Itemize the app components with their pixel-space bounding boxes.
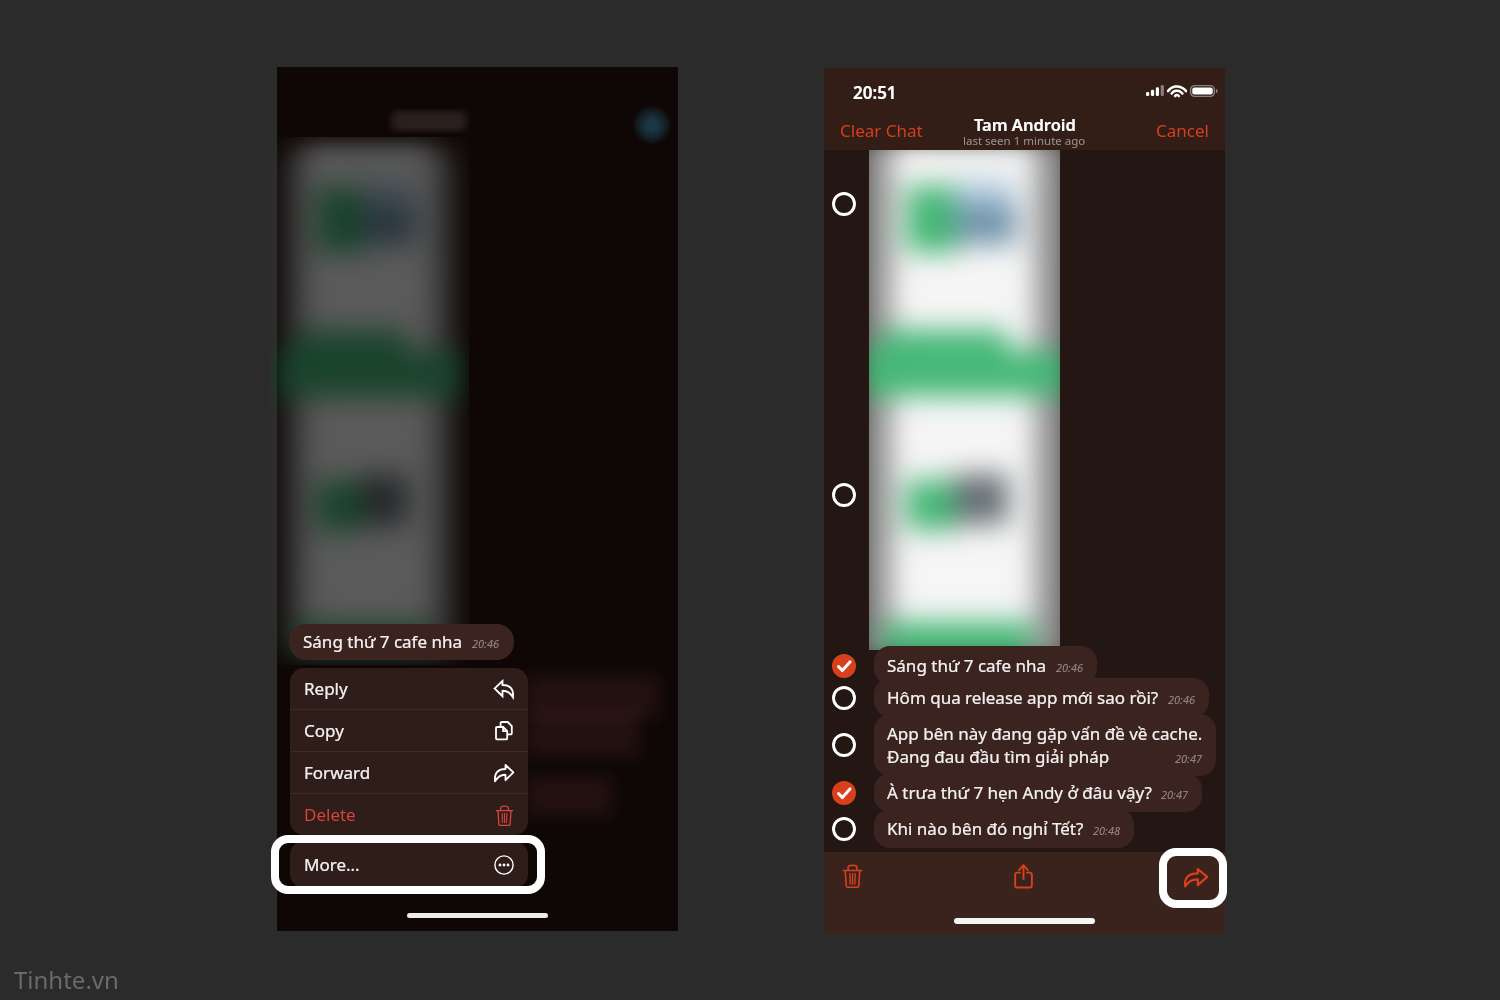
button[interactable]: Share: [999, 852, 1047, 900]
button[interactable]: Delete: [828, 852, 876, 900]
button[interactable]: Cancel: [1152, 115, 1213, 146]
button[interactable]: Reply: [290, 668, 528, 709]
button[interactable]: Clear Chat: [836, 115, 927, 146]
staticText: Tinhte.vn: [14, 963, 119, 996]
button[interactable]: À trưa thứ 7 hẹn Andy ở đâu vậy?: [824, 773, 1202, 812]
staticText: Copy: [304, 719, 344, 742]
button[interactable]: Khi nào bên đó nghỉ Tết?: [824, 809, 1134, 848]
button[interactable]: Forward: [1172, 853, 1220, 901]
button[interactable]: App bên này đang gặp vấn đề về cache. Đa…: [824, 714, 1216, 776]
staticText: Reply: [304, 677, 348, 700]
staticText: 20:47: [1161, 787, 1189, 802]
button[interactable]: Select message: [832, 483, 856, 507]
staticText: Sáng thứ 7 cafe nha: [303, 630, 463, 653]
button[interactable]: Hôm qua release app mới sao rồi?: [824, 678, 1209, 717]
button[interactable]: Select message: [832, 192, 856, 216]
staticText: À trưa thứ 7 hẹn Andy ở đâu vậy?: [887, 781, 1152, 804]
staticText: Sáng thứ 7 cafe nha: [887, 654, 1047, 677]
staticText: Khi nào bên đó nghỉ Tết?: [887, 817, 1084, 840]
staticText: 20:47: [1175, 751, 1203, 766]
staticText: last seen 1 minute ago: [963, 133, 1086, 149]
button[interactable]: Sáng thứ 7 cafe nha: [824, 646, 1097, 685]
staticText: Tam Android: [974, 113, 1076, 135]
staticText: 20:46: [1168, 692, 1196, 707]
button[interactable]: More...: [290, 841, 528, 888]
staticText: 20:48: [1093, 823, 1121, 838]
staticText: Forward: [304, 761, 371, 784]
button[interactable]: More: [271, 835, 545, 894]
button[interactable]: Delete: [290, 794, 528, 835]
staticText: 20:51: [853, 81, 897, 104]
staticText: Cancel: [1156, 119, 1209, 142]
staticText: Clear Chat: [840, 119, 923, 142]
staticText: More...: [304, 853, 360, 876]
staticText: Hôm qua release app mới sao rồi?: [887, 686, 1159, 709]
button[interactable]: Forward: [290, 752, 528, 793]
staticText: Delete: [304, 803, 356, 826]
button[interactable]: Sáng thứ 7 cafe nha: [289, 624, 514, 660]
staticText: 20:46: [1056, 660, 1084, 675]
staticText: 20:46: [472, 636, 500, 651]
staticText: App bên này đang gặp vấn đề về cache. Đa…: [887, 722, 1203, 768]
button[interactable]: Copy: [290, 710, 528, 751]
